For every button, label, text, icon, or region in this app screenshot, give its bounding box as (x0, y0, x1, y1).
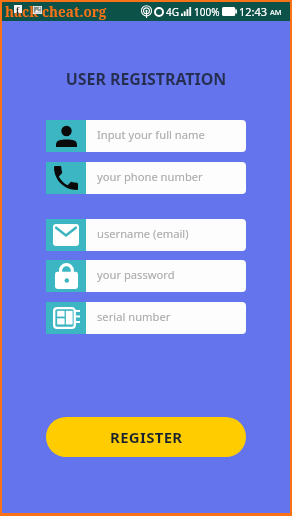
button[interactable]: REGISTER (46, 417, 246, 457)
staticText: hack-cheat.org (5, 3, 107, 21)
staticText: f (16, 5, 20, 13)
staticText: Input your full name (97, 127, 205, 142)
staticText: 12:43 (239, 4, 268, 19)
button[interactable]: serial number (46, 302, 246, 334)
staticText: 100% (194, 5, 220, 19)
staticText: USER REGISTRATION (2, 68, 290, 90)
staticText: your phone number (97, 169, 203, 184)
staticText: REGISTER (110, 427, 183, 447)
button[interactable]: username (email) (46, 219, 246, 251)
staticText: serial number (97, 309, 171, 324)
button[interactable]: your password (46, 260, 246, 292)
staticText: AM (270, 7, 282, 17)
button[interactable]: your phone number (46, 162, 246, 194)
button[interactable]: Input your full name (46, 120, 246, 152)
staticText: your password (97, 267, 175, 282)
staticText: 4G (166, 5, 179, 19)
staticText: username (email) (97, 226, 189, 241)
